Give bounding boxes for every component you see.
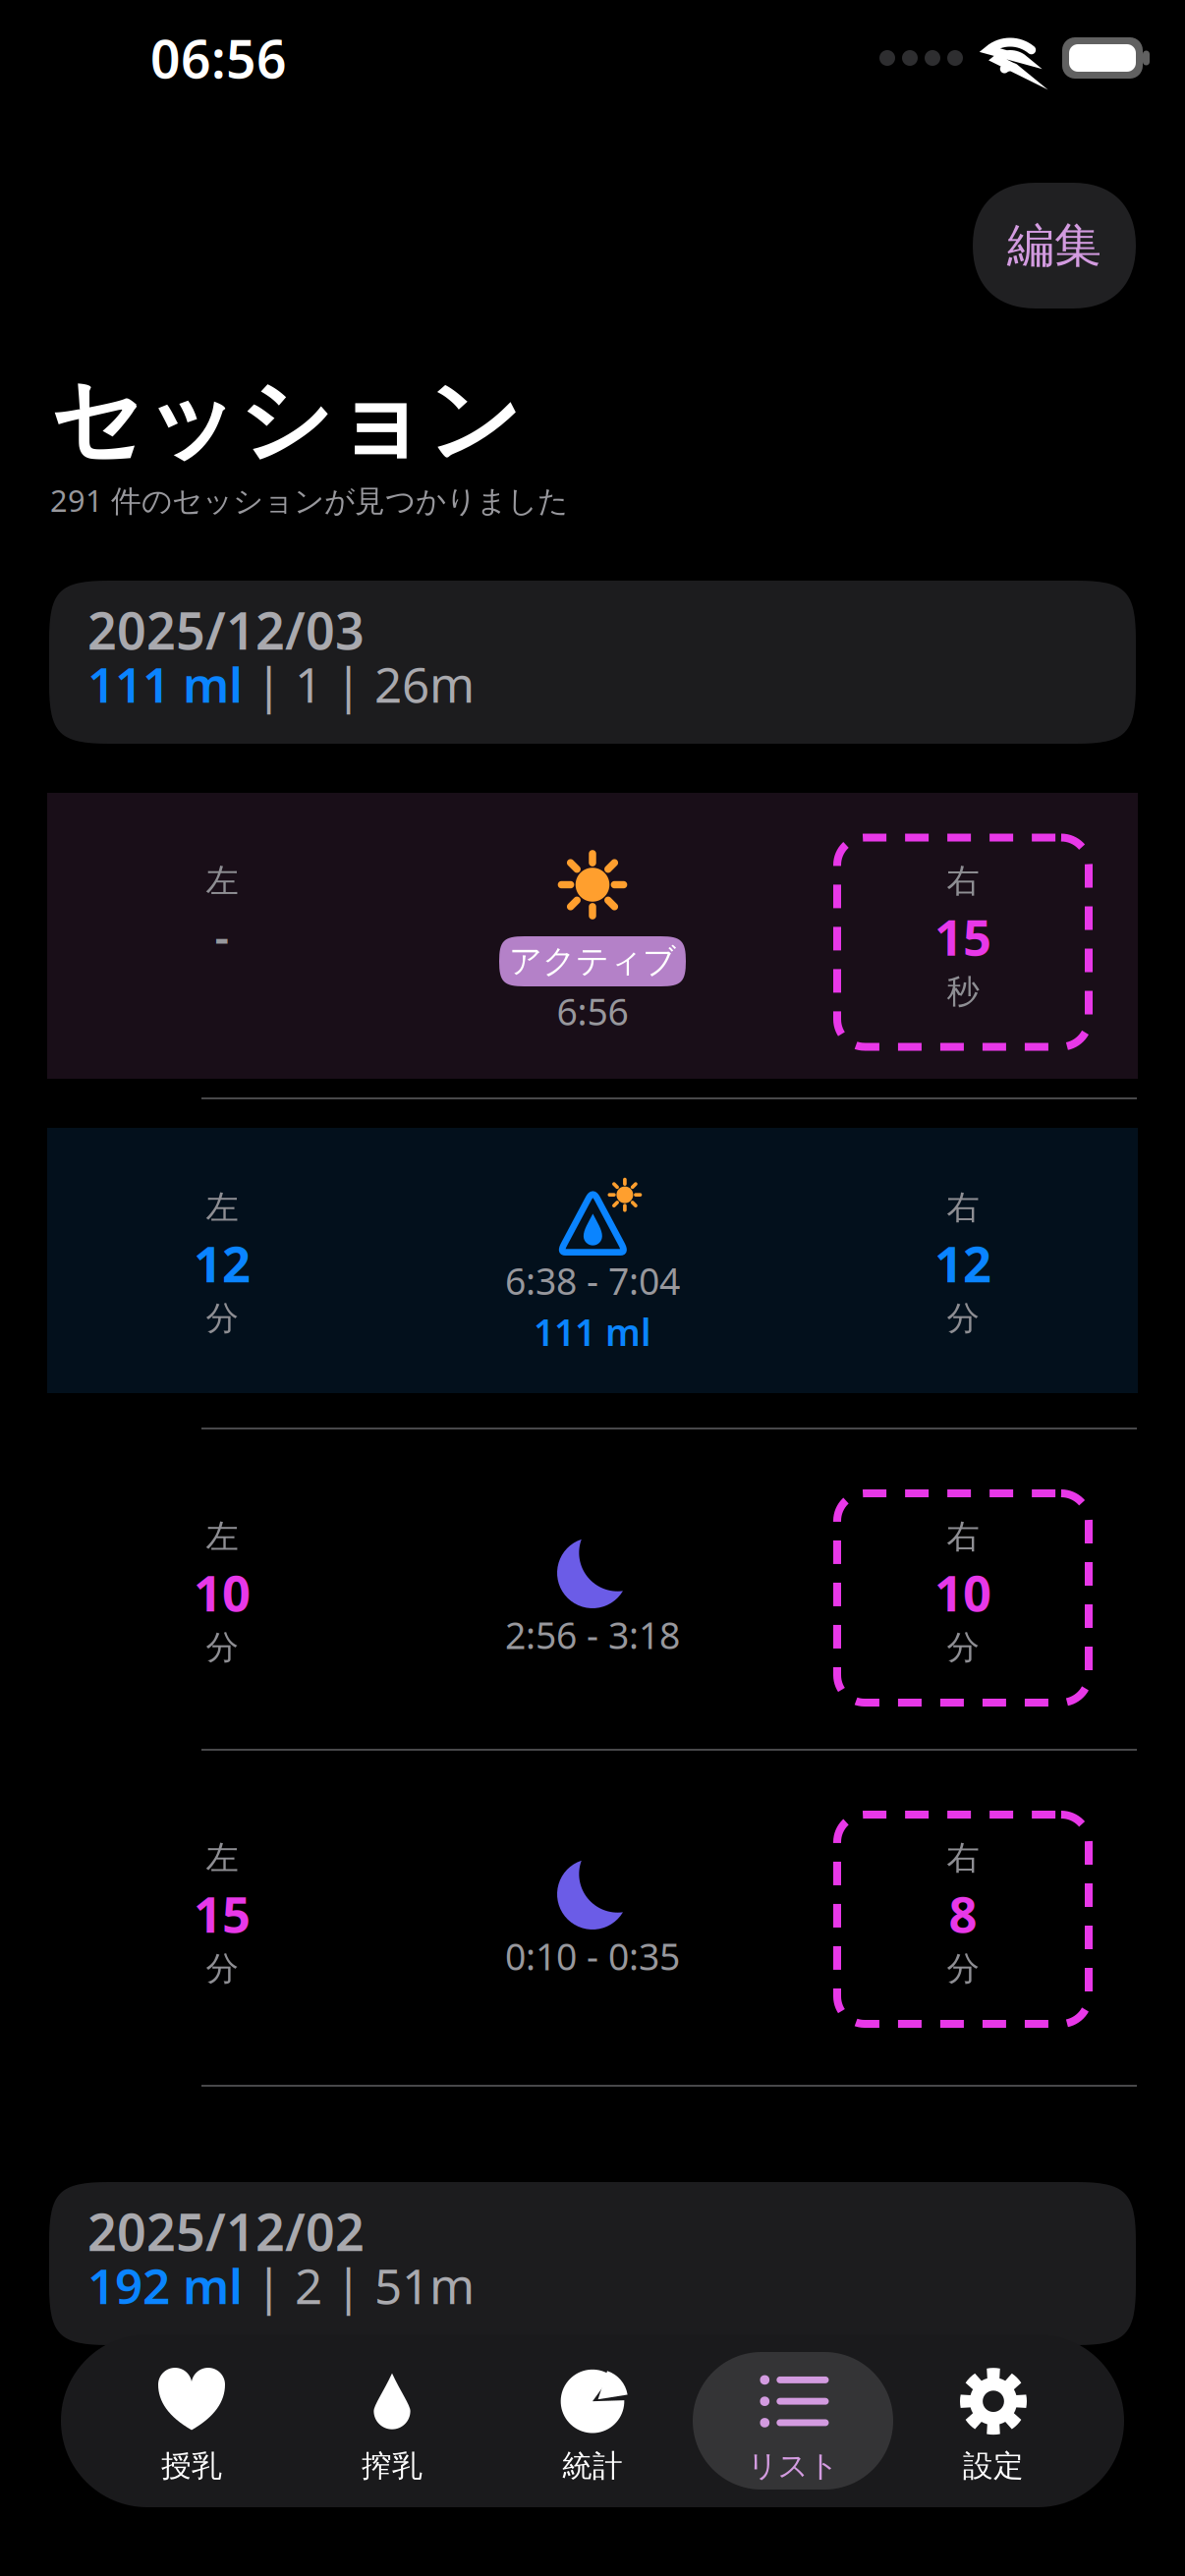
- staticText: -: [215, 907, 229, 966]
- staticText: 編集: [1007, 217, 1101, 275]
- button[interactable]: 設定: [893, 2352, 1094, 2490]
- staticText: 8: [949, 1880, 977, 1946]
- staticText: 右: [947, 1838, 979, 1878]
- button[interactable]: 2025/12/03: [49, 581, 1136, 744]
- staticText: 192 ml: [87, 2253, 243, 2317]
- staticText: 右: [947, 861, 979, 901]
- staticText: 2025/12/02: [87, 2197, 365, 2265]
- staticText: 右: [947, 1517, 979, 1557]
- staticText: 0:10 - 0:35: [505, 1932, 680, 1980]
- staticText: 6:56: [557, 987, 628, 1036]
- staticText: アクティブ: [509, 941, 676, 981]
- staticText: 10: [934, 1559, 991, 1625]
- staticText: 左: [206, 1838, 238, 1878]
- staticText: 左: [206, 861, 238, 901]
- staticText: 15: [194, 1880, 251, 1946]
- staticText: 分: [206, 1949, 238, 1989]
- staticText: 2025/12/03: [87, 596, 365, 664]
- staticText: 統計: [562, 2447, 623, 2485]
- button[interactable]: 左: [47, 793, 1138, 1079]
- staticText: 12: [194, 1230, 251, 1296]
- staticText: 6:38 - 7:04: [505, 1256, 680, 1305]
- staticText: | 1 | 26m: [243, 652, 475, 716]
- button[interactable]: 授乳: [91, 2352, 292, 2490]
- staticText: 111 ml: [87, 652, 243, 716]
- staticText: 15: [934, 903, 991, 969]
- button[interactable]: 搾乳: [292, 2352, 492, 2490]
- staticText: 授乳: [161, 2447, 222, 2485]
- staticText: 分: [947, 1298, 979, 1338]
- staticText: セッション: [50, 364, 522, 477]
- button[interactable]: 統計: [492, 2352, 693, 2490]
- staticText: 10: [194, 1559, 251, 1625]
- staticText: 06:56: [150, 23, 287, 93]
- staticText: 搾乳: [362, 2447, 423, 2485]
- staticText: 秒: [947, 972, 979, 1012]
- staticText: 2:56 - 3:18: [505, 1610, 680, 1659]
- staticText: 111 ml: [534, 1307, 651, 1356]
- button[interactable]: 編集: [973, 183, 1136, 308]
- staticText: 分: [947, 1627, 979, 1668]
- staticText: 291 件のセッションが見つかりました: [50, 480, 568, 520]
- staticText: 12: [934, 1230, 991, 1296]
- button[interactable]: リスト: [693, 2352, 893, 2490]
- staticText: 分: [206, 1298, 238, 1338]
- staticText: 設定: [963, 2447, 1024, 2485]
- staticText: リスト: [747, 2447, 839, 2485]
- staticText: 左: [206, 1517, 238, 1557]
- button[interactable]: 左: [47, 1128, 1138, 1393]
- button[interactable]: 左: [47, 1778, 1138, 2044]
- staticText: | 2 | 51m: [243, 2253, 475, 2317]
- button[interactable]: 2025/12/02: [49, 2182, 1136, 2345]
- staticText: 右: [947, 1187, 979, 1228]
- staticText: 左: [206, 1187, 238, 1228]
- button[interactable]: 左: [47, 1457, 1138, 1722]
- staticText: 分: [947, 1949, 979, 1989]
- staticText: 分: [206, 1627, 238, 1668]
